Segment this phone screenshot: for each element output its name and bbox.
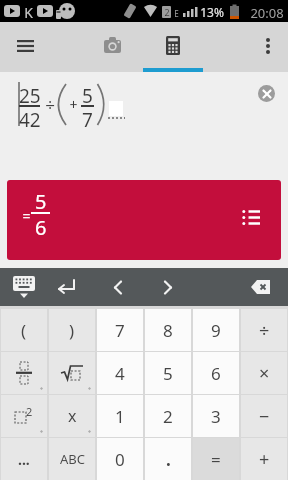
button[interactable]: 9 bbox=[193, 309, 239, 351]
button[interactable] bbox=[143, 22, 203, 68]
staticText: 4 bbox=[115, 362, 125, 385]
staticText: 5 bbox=[163, 362, 173, 385]
button[interactable]: 0 bbox=[97, 438, 143, 480]
button[interactable]: × bbox=[241, 352, 287, 394]
staticText: − bbox=[259, 404, 270, 429]
button[interactable] bbox=[148, 268, 188, 306]
staticText: 2 bbox=[163, 405, 173, 428]
button[interactable] bbox=[1, 352, 47, 394]
staticText: 5 bbox=[35, 188, 47, 212]
staticText: E bbox=[174, 8, 179, 18]
staticText: = bbox=[22, 206, 31, 225]
button[interactable]: 5 bbox=[145, 352, 191, 394]
button[interactable]: 7 bbox=[97, 309, 143, 351]
button[interactable] bbox=[252, 30, 284, 62]
staticText: + bbox=[69, 95, 78, 114]
button[interactable]: 2 bbox=[145, 395, 191, 437]
staticText: 7 bbox=[115, 319, 125, 342]
staticText: ... bbox=[18, 450, 30, 469]
button[interactable] bbox=[49, 352, 95, 394]
staticText: 42 bbox=[19, 107, 40, 129]
button[interactable]: = bbox=[7, 180, 281, 260]
button[interactable]: ( bbox=[1, 309, 47, 351]
button[interactable] bbox=[9, 30, 41, 62]
button[interactable] bbox=[258, 85, 275, 102]
button[interactable]: 1 bbox=[97, 395, 143, 437]
staticText: K bbox=[24, 3, 33, 20]
button[interactable]: 3 bbox=[193, 395, 239, 437]
staticText: = bbox=[211, 448, 221, 471]
staticText: 7 bbox=[82, 107, 93, 129]
staticText: x bbox=[68, 405, 77, 427]
staticText: 8 bbox=[163, 319, 173, 342]
button[interactable]: + bbox=[241, 438, 287, 480]
button[interactable] bbox=[235, 200, 271, 236]
button[interactable] bbox=[241, 268, 281, 306]
staticText: ABC bbox=[60, 450, 85, 468]
button[interactable] bbox=[98, 268, 138, 306]
staticText: 9 bbox=[211, 319, 221, 342]
button[interactable]: 6 bbox=[193, 352, 239, 394]
button[interactable]: − bbox=[241, 395, 287, 437]
button[interactable] bbox=[83, 22, 143, 68]
staticText: 6 bbox=[35, 214, 47, 238]
staticText: ÷ bbox=[259, 318, 270, 343]
button[interactable]: ABC bbox=[49, 438, 95, 480]
staticText: 1 bbox=[115, 405, 125, 428]
staticText: 5 bbox=[82, 83, 93, 105]
button[interactable]: 2 bbox=[1, 395, 47, 437]
staticText: 3 bbox=[211, 405, 221, 428]
staticText: . bbox=[166, 448, 171, 471]
staticText: 20:08 bbox=[250, 4, 284, 19]
staticText: ÷ bbox=[45, 93, 55, 116]
button[interactable]: ) bbox=[49, 309, 95, 351]
staticText: 25 bbox=[19, 83, 40, 105]
button[interactable]: = bbox=[193, 438, 239, 480]
button[interactable] bbox=[47, 268, 87, 306]
staticText: ) bbox=[69, 319, 75, 342]
staticText: ( bbox=[21, 319, 27, 342]
staticText: × bbox=[259, 361, 270, 386]
button[interactable]: 8 bbox=[145, 309, 191, 351]
staticText: 2 bbox=[164, 6, 170, 18]
button[interactable]: ... bbox=[1, 438, 47, 480]
staticText: 6 bbox=[211, 362, 221, 385]
staticText: 0 bbox=[115, 448, 125, 471]
button[interactable]: . bbox=[145, 438, 191, 480]
staticText: 13% bbox=[200, 4, 224, 19]
button[interactable] bbox=[4, 268, 44, 306]
staticText: + bbox=[259, 447, 270, 472]
button[interactable]: 4 bbox=[97, 352, 143, 394]
button[interactable]: x bbox=[49, 395, 95, 437]
staticText: 2 bbox=[26, 404, 33, 419]
button[interactable]: ÷ bbox=[241, 309, 287, 351]
